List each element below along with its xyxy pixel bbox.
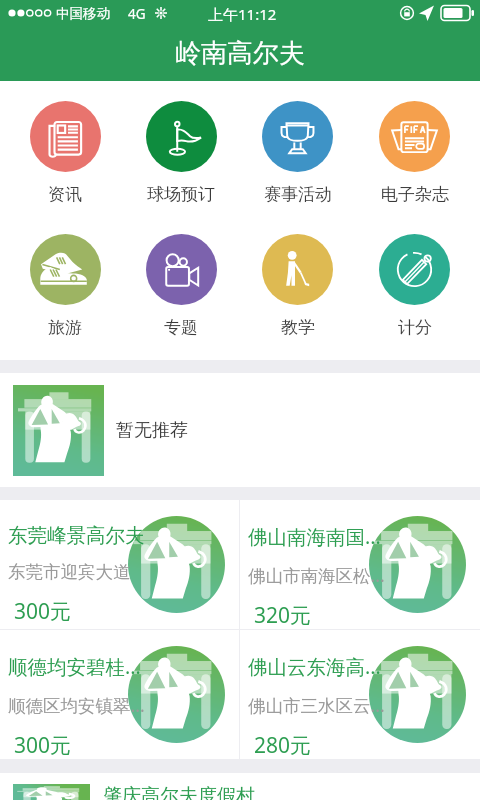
- staticText: 旅游: [48, 317, 82, 338]
- staticText: 4G: [128, 5, 146, 23]
- staticText: 肇庆高尔夫度假村: [103, 784, 255, 800]
- staticText: 电子杂志: [381, 184, 449, 205]
- other: 教学: [262, 234, 333, 305]
- button[interactable]: 顺德均安碧桂...: [0, 630, 239, 759]
- staticText: 计分: [398, 317, 432, 338]
- other: 球场预订: [146, 101, 217, 172]
- other: 计分: [379, 234, 450, 305]
- staticText: 上午11:12: [208, 4, 277, 24]
- staticText: 顺德区均安镇翠...: [8, 693, 145, 717]
- staticText: 320元: [254, 601, 312, 629]
- staticText: 暂无推荐: [116, 419, 188, 442]
- other: 专题: [146, 234, 217, 305]
- staticText: 佛山南海南国...: [248, 523, 381, 550]
- other: 旅游: [30, 234, 101, 305]
- other: 赛事活动: [262, 101, 333, 172]
- staticText: 岭南高尔夫: [175, 37, 305, 70]
- button[interactable]: 球场预订: [123, 101, 239, 205]
- button[interactable]: 肇庆高尔夫度假村: [0, 773, 480, 800]
- button[interactable]: 暂无推荐: [0, 373, 480, 487]
- staticText: 300元: [14, 731, 72, 759]
- button[interactable]: 计分: [356, 234, 473, 338]
- staticText: 佛山市三水区云...: [248, 693, 385, 717]
- staticText: 球场预订: [147, 184, 215, 205]
- staticText: 东莞市迎宾大道: [8, 561, 131, 583]
- button[interactable]: 资讯: [7, 101, 123, 205]
- staticText: 280元: [254, 731, 312, 759]
- other: 资讯: [30, 101, 101, 172]
- button[interactable]: 佛山云东海高...: [240, 630, 480, 759]
- staticText: 专题: [164, 317, 198, 338]
- button[interactable]: 电子杂志: [356, 101, 473, 205]
- button[interactable]: 赛事活动: [239, 101, 356, 205]
- staticText: 佛山云东海高...: [248, 653, 381, 680]
- staticText: 顺德均安碧桂...: [8, 653, 141, 680]
- button[interactable]: 佛山南海南国...: [240, 500, 480, 629]
- staticText: 中国移动: [56, 5, 110, 22]
- staticText: 资讯: [48, 184, 82, 205]
- button[interactable]: 旅游: [7, 234, 123, 338]
- button[interactable]: 教学: [239, 234, 356, 338]
- staticText: 赛事活动: [264, 184, 332, 205]
- button[interactable]: 专题: [123, 234, 239, 338]
- staticText: 佛山市南海区松...: [248, 563, 385, 587]
- button[interactable]: 东莞峰景高尔夫: [0, 500, 239, 629]
- staticText: 300元: [14, 597, 72, 626]
- other: 电子杂志: [379, 101, 450, 172]
- staticText: 教学: [281, 317, 315, 338]
- staticText: 东莞峰景高尔夫: [8, 523, 145, 548]
